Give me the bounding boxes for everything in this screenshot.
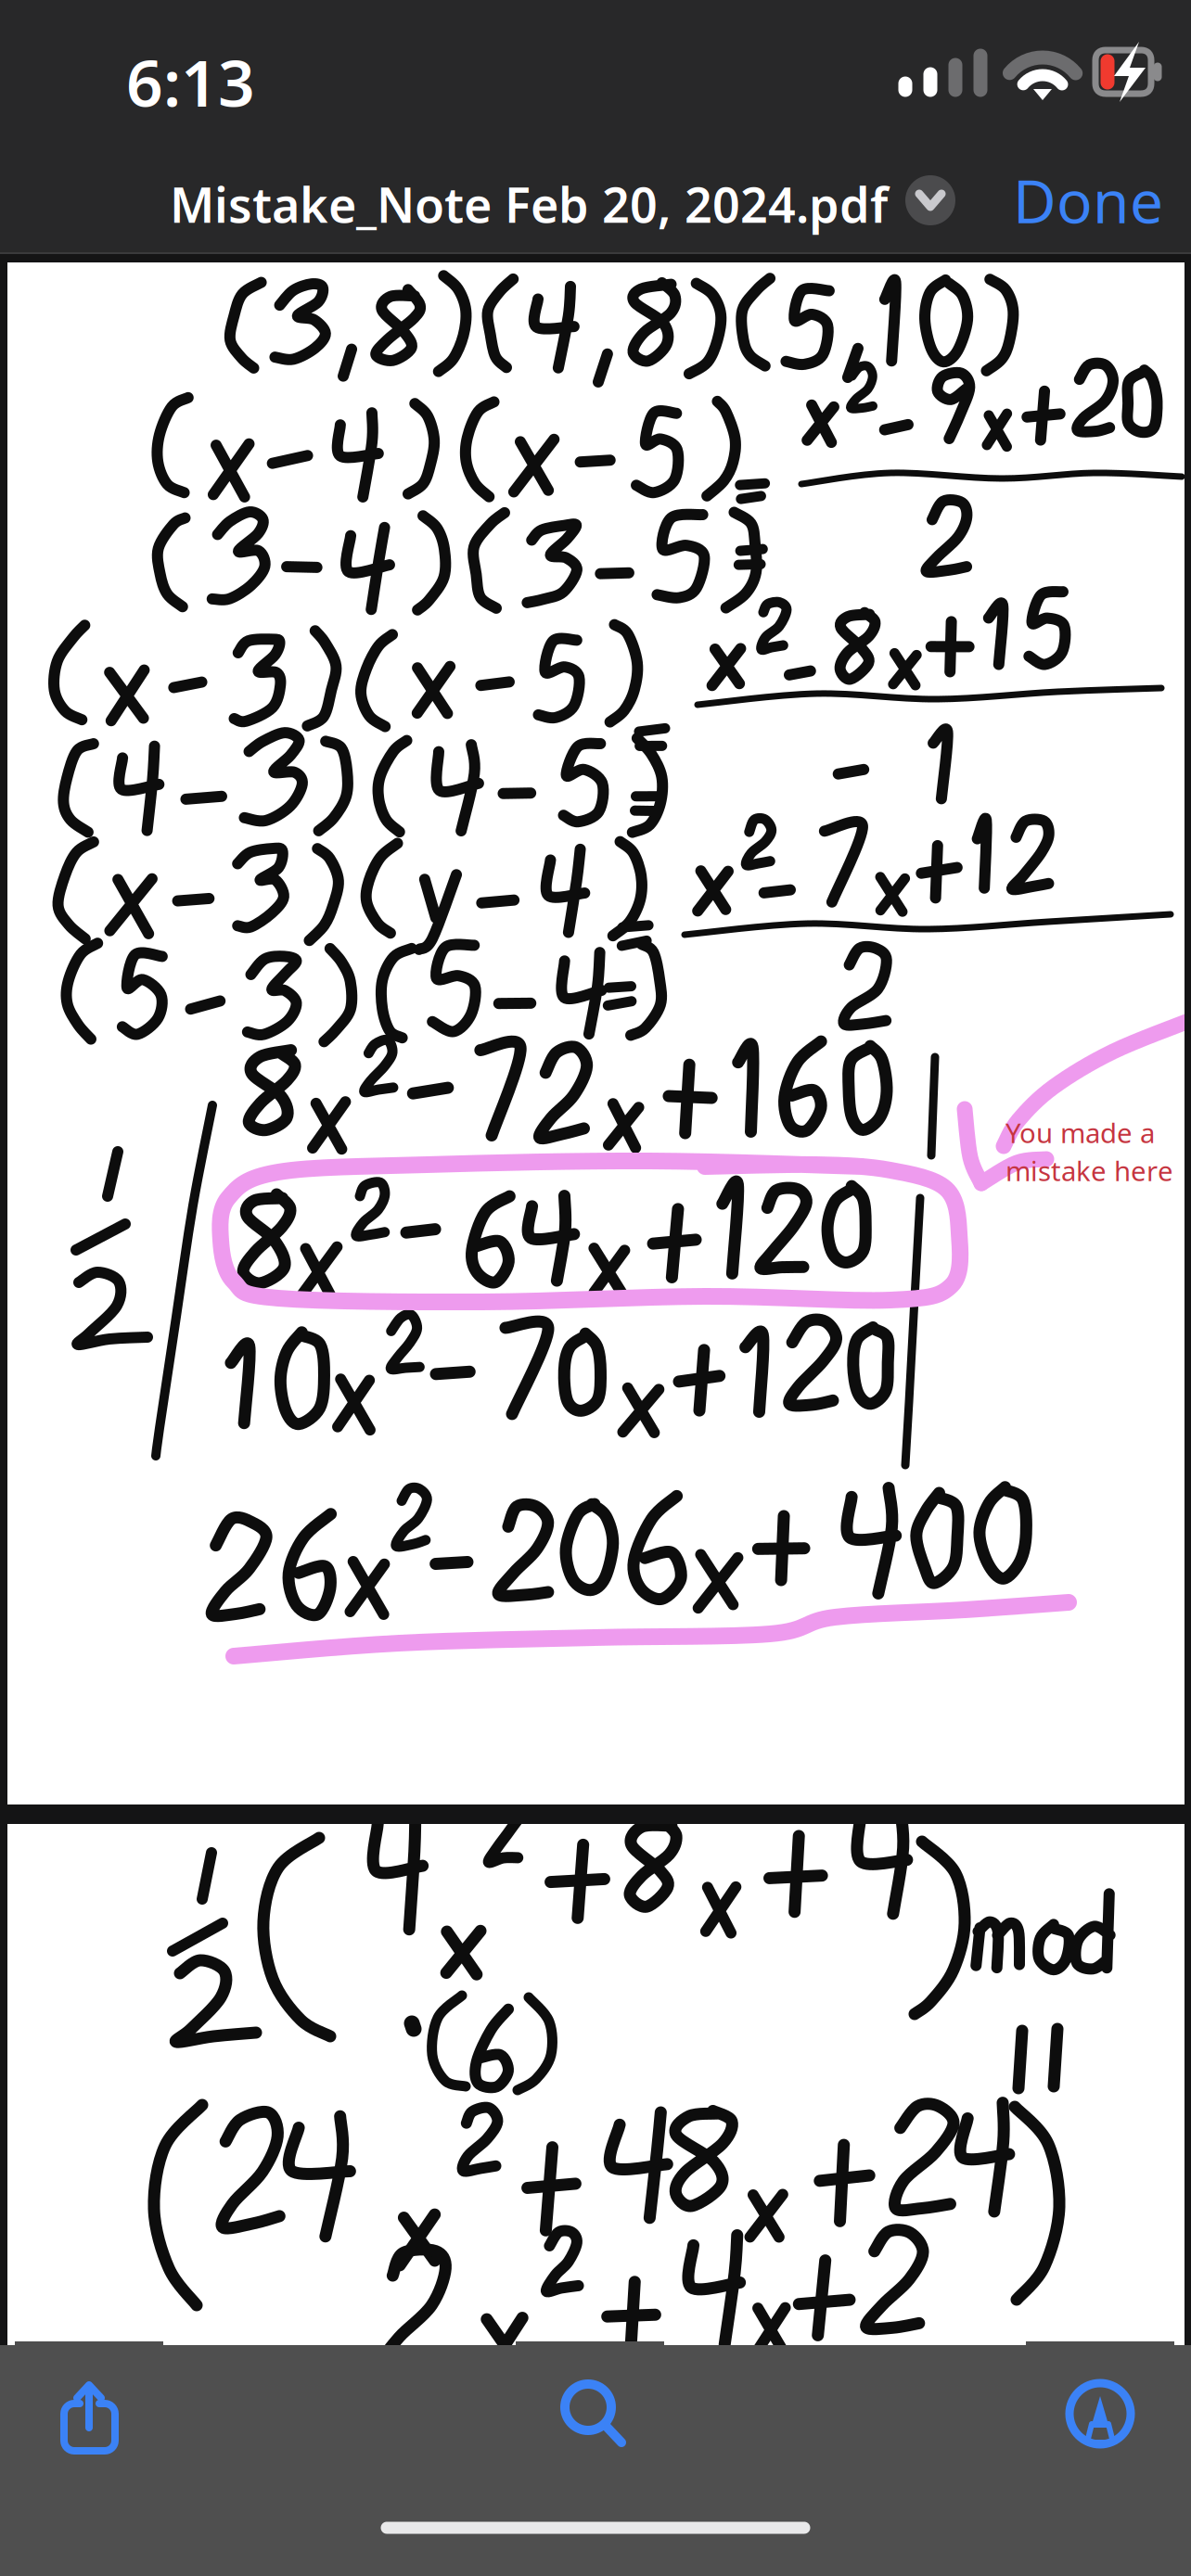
button[interactable]: Document options [905, 175, 955, 225]
button[interactable]: Mistake_Note Feb 20, 2024.pdf [158, 174, 900, 234]
staticText: Mistake_Note Feb 20, 2024.pdf [170, 172, 888, 236]
button[interactable]: Done [1005, 171, 1172, 230]
staticText: 6:13 [126, 39, 255, 124]
staticText: You made a [1005, 1115, 1155, 1151]
button[interactable]: Markup [1026, 2341, 1174, 2490]
button[interactable]: Search [516, 2341, 664, 2490]
button[interactable]: Share [15, 2341, 163, 2490]
staticText: mistake here [1005, 1153, 1173, 1189]
staticText: Done [1013, 161, 1163, 240]
